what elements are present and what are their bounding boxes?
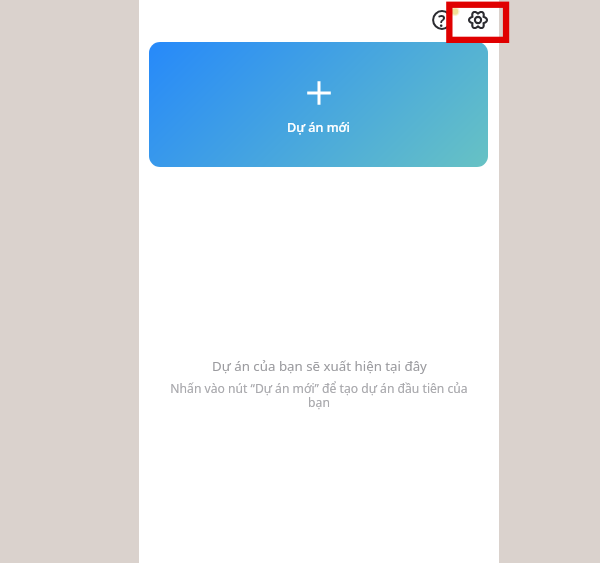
button[interactable]: Help bbox=[432, 10, 452, 30]
staticText: Nhấn vào nút “Dự án mới” để tạo dự án đầ… bbox=[165, 380, 473, 411]
button[interactable]: Settings bbox=[468, 10, 488, 30]
staticText: Dự án của bạn sẽ xuất hiện tại đây bbox=[212, 357, 427, 375]
staticText: Dự án mới bbox=[287, 119, 350, 136]
button[interactable]: Dự án mới bbox=[149, 42, 488, 167]
staticText: ? bbox=[438, 10, 446, 30]
